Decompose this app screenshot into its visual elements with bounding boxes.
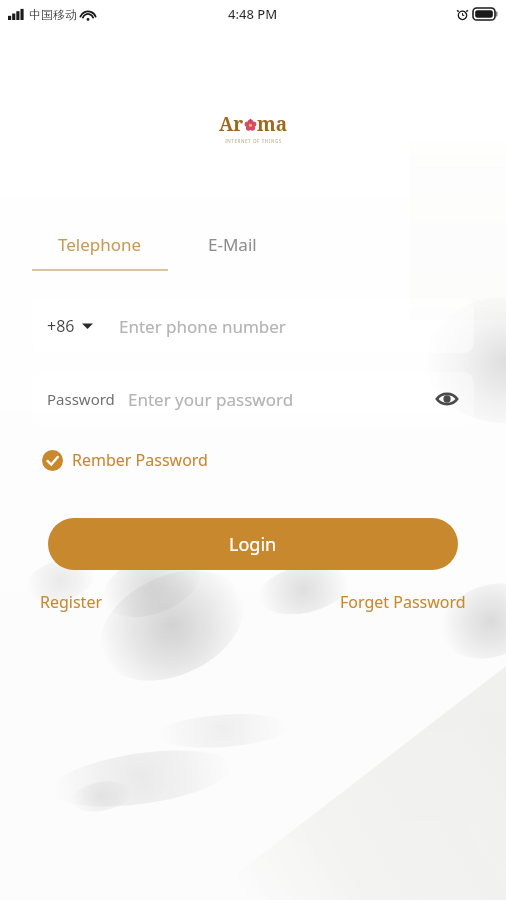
button[interactable]: Password — [32, 372, 474, 426]
button[interactable]: Register — [36, 587, 107, 617]
staticText: 中国移动 — [29, 7, 77, 22]
staticText: 4:48 PM — [228, 5, 278, 23]
staticText: Register — [40, 591, 103, 613]
button[interactable]: +86 — [32, 299, 474, 353]
button[interactable]: Show password — [428, 380, 466, 418]
button[interactable]: E-Mail — [190, 229, 275, 260]
staticText: Forget Password — [340, 591, 466, 613]
staticText: +86 — [47, 315, 75, 337]
button[interactable]: Forget Password — [336, 587, 470, 617]
staticText: E-Mail — [208, 233, 257, 256]
staticText: Telephone — [58, 233, 142, 256]
button[interactable]: Login — [48, 518, 458, 570]
staticText: Login — [229, 532, 277, 557]
staticText: Enter phone number — [119, 315, 286, 338]
staticText: Rember Password — [72, 449, 208, 471]
staticText: Password — [47, 389, 115, 409]
staticText: Ar — [219, 111, 244, 137]
staticText: Enter your password — [128, 388, 294, 411]
button[interactable]: Telephone — [40, 229, 160, 260]
staticText: INTERNET OF THINGS — [225, 138, 282, 144]
staticText: ma — [257, 111, 288, 137]
button[interactable]: Rember Password — [38, 445, 212, 475]
